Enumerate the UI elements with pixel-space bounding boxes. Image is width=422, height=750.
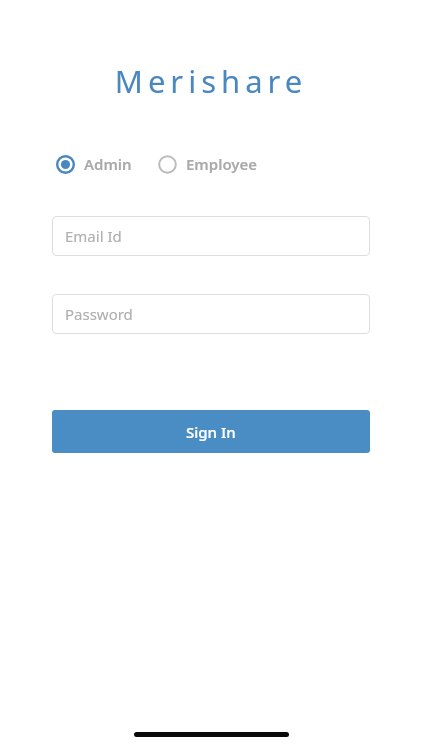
staticText: Sign In — [186, 422, 236, 442]
staticText: Admin — [84, 154, 132, 174]
button[interactable]: Sign In — [52, 410, 370, 453]
button[interactable]: Employee — [158, 150, 258, 178]
staticText: Email Id — [65, 226, 122, 246]
staticText: Merishare — [0, 60, 422, 102]
staticText: Employee — [186, 154, 258, 174]
button[interactable]: Admin — [56, 150, 132, 178]
staticText: Password — [65, 304, 133, 324]
button[interactable]: Email Id — [52, 216, 370, 256]
button[interactable]: Password — [52, 294, 370, 334]
